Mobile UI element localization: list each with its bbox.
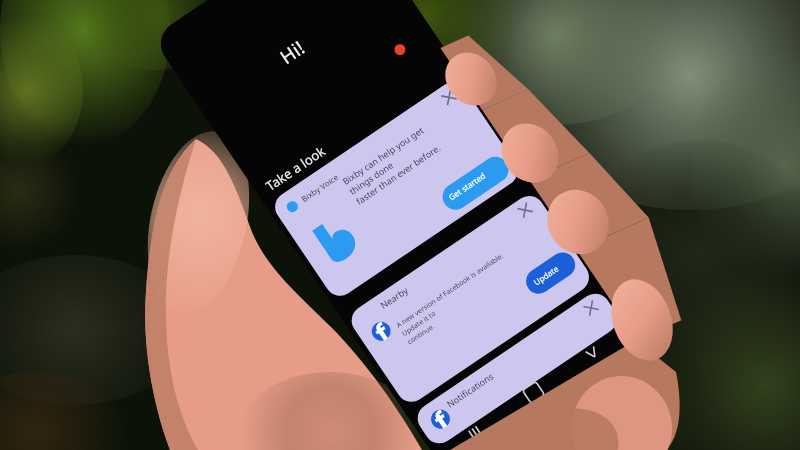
staticText: Bixby can help you get things done faste… [340, 110, 459, 207]
staticText: Update [531, 263, 561, 287]
staticText: Hi! [275, 34, 310, 70]
staticText: Take a look [262, 142, 329, 195]
staticText: Bixby Voice [299, 171, 341, 204]
staticText: Notifications [444, 369, 496, 410]
staticText: Get started [446, 169, 488, 202]
staticText: Nearby [378, 284, 410, 311]
staticText: A new version of Facebook is available. … [394, 238, 536, 347]
